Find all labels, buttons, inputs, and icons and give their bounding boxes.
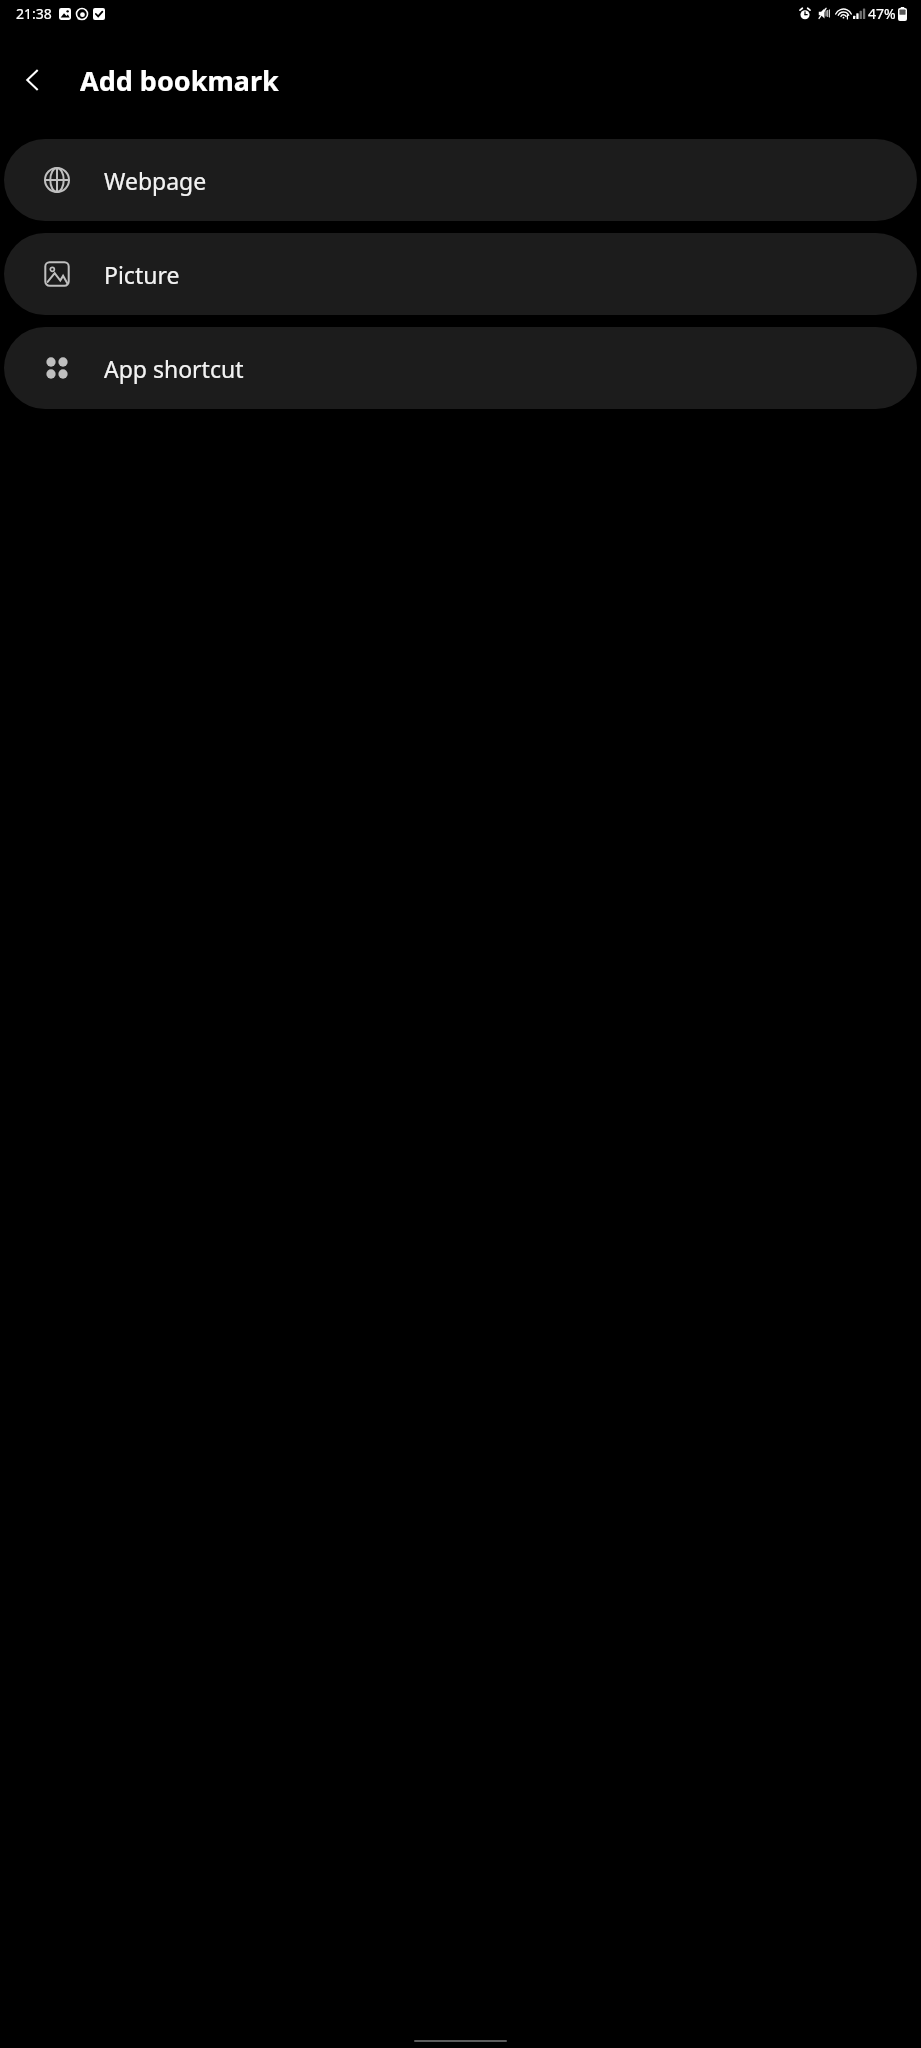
button[interactable]: App shortcut bbox=[4, 327, 917, 409]
staticText: 21:38 bbox=[16, 4, 52, 23]
staticText: App shortcut bbox=[104, 353, 244, 384]
staticText: Picture bbox=[104, 259, 180, 290]
staticText: Webpage bbox=[104, 165, 207, 196]
staticText: 47% bbox=[868, 4, 896, 23]
staticText: Add bookmark bbox=[80, 62, 279, 99]
button[interactable]: Back bbox=[10, 57, 56, 103]
button[interactable]: Picture bbox=[4, 233, 917, 315]
button[interactable]: Webpage bbox=[4, 139, 917, 221]
